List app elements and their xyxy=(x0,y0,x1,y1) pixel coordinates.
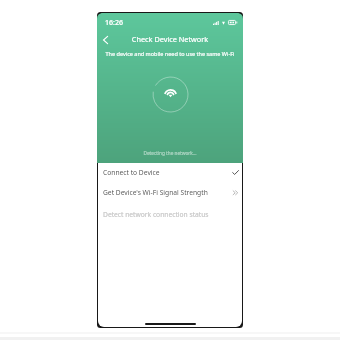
button[interactable]: Connect to Device xyxy=(98,162,242,182)
staticText: 16:26 xyxy=(105,18,123,28)
button[interactable]: Back xyxy=(98,32,113,48)
button[interactable]: Get Device's Wi-Fi Signal Strength xyxy=(98,182,242,202)
staticText: Connect to Device xyxy=(103,168,160,177)
staticText: The device and mobile need to use the sa… xyxy=(98,50,242,57)
staticText: Detecting the network... xyxy=(98,150,242,156)
button[interactable]: Detect network connection status xyxy=(98,204,242,224)
staticText: Check Device Network xyxy=(98,34,242,44)
staticText: Detect network connection status xyxy=(103,210,209,219)
staticText: Get Device's Wi-Fi Signal Strength xyxy=(103,188,208,197)
